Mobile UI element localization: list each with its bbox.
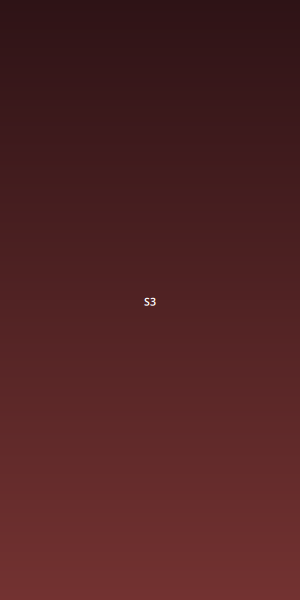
staticText: S3 xyxy=(144,294,156,309)
